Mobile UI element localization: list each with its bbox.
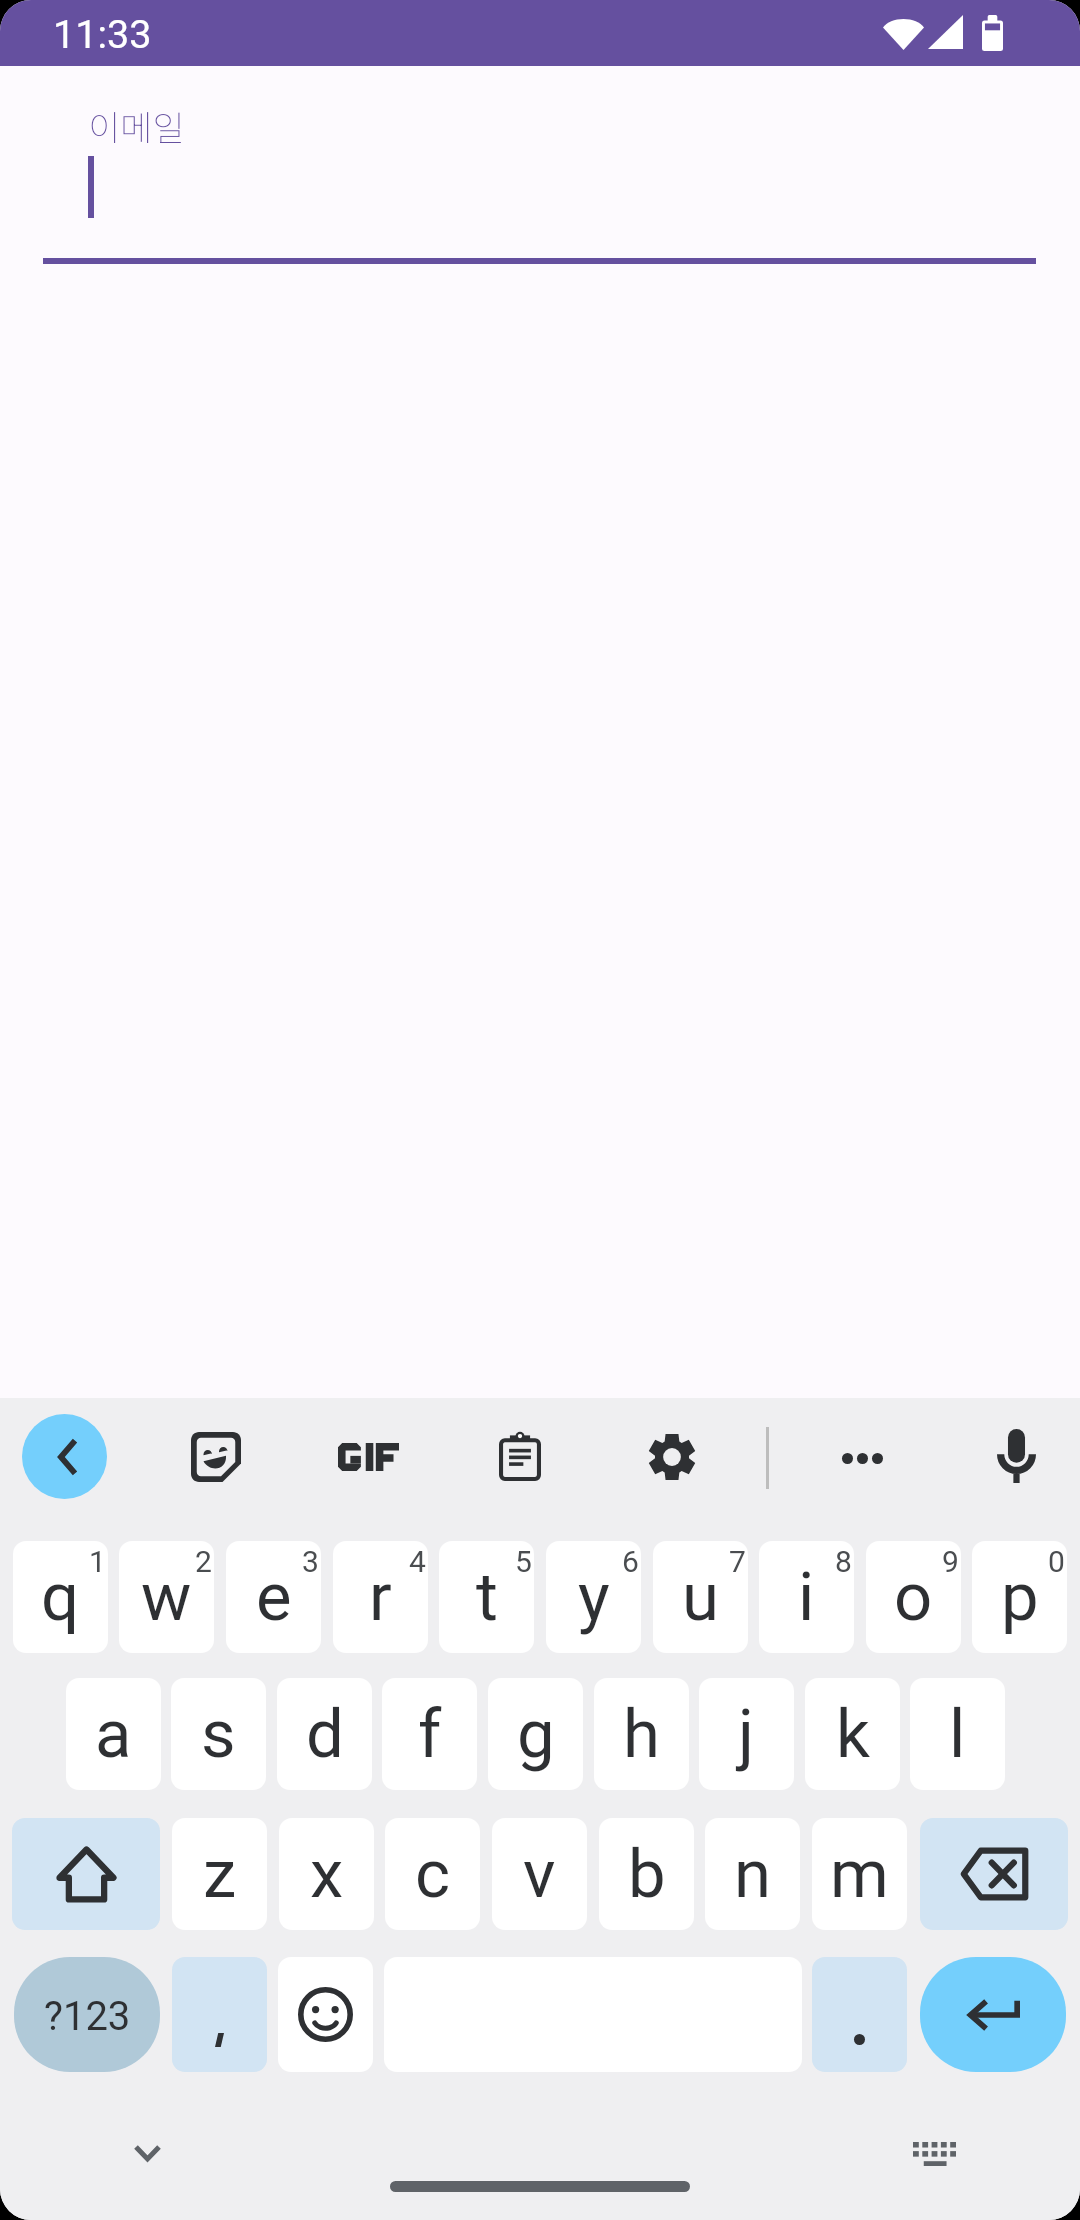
button[interactable]: c xyxy=(385,1818,480,1930)
staticText: m xyxy=(830,1835,889,1914)
staticText: 1 xyxy=(89,1544,106,1579)
button[interactable]: y xyxy=(546,1541,641,1653)
button[interactable]: Voice input xyxy=(976,1416,1056,1496)
staticText: 8 xyxy=(835,1544,852,1579)
button[interactable]: Stickers xyxy=(176,1417,256,1497)
staticText: g xyxy=(517,1695,555,1774)
staticText: a xyxy=(95,1695,132,1774)
button[interactable]: z xyxy=(172,1818,267,1930)
button[interactable]: Shift xyxy=(12,1818,160,1930)
staticText: q xyxy=(41,1558,80,1637)
staticText: c xyxy=(415,1835,451,1914)
staticText: 2 xyxy=(195,1544,212,1579)
button[interactable]: h xyxy=(594,1678,689,1790)
staticText: 7 xyxy=(729,1544,746,1579)
staticText: t xyxy=(476,1558,498,1637)
staticText: x xyxy=(310,1835,344,1914)
button[interactable]: Switch keyboard xyxy=(893,2116,975,2198)
staticText: i xyxy=(798,1558,815,1637)
staticText: ?123 xyxy=(44,1993,131,2040)
staticText: d xyxy=(306,1695,344,1774)
staticText: b xyxy=(628,1835,666,1914)
button[interactable]: Backspace xyxy=(920,1818,1068,1930)
button[interactable]: d xyxy=(277,1678,372,1790)
button[interactable]: Settings xyxy=(632,1417,712,1497)
button[interactable]: Back xyxy=(22,1414,107,1499)
button[interactable]: n xyxy=(705,1818,800,1930)
staticText: 5 xyxy=(515,1544,532,1579)
staticText: r xyxy=(369,1558,392,1637)
button[interactable]: Enter xyxy=(920,1957,1066,2072)
button[interactable]: x xyxy=(279,1818,374,1930)
button[interactable]: k xyxy=(805,1678,900,1790)
staticText: k xyxy=(836,1695,870,1774)
staticText: v xyxy=(523,1835,556,1914)
staticText: 4 xyxy=(409,1544,426,1579)
staticText: e xyxy=(256,1558,292,1637)
button[interactable]: l xyxy=(910,1678,1005,1790)
button[interactable]: e xyxy=(226,1541,321,1653)
button[interactable]: f xyxy=(382,1678,477,1790)
button[interactable]: t xyxy=(439,1541,534,1653)
staticText: s xyxy=(201,1695,236,1774)
staticText: z xyxy=(203,1835,237,1914)
button[interactable]: r xyxy=(333,1541,428,1653)
staticText: j xyxy=(738,1695,755,1774)
staticText: 9 xyxy=(942,1544,959,1579)
button[interactable] xyxy=(812,1957,907,2072)
staticText: 6 xyxy=(622,1544,639,1579)
button[interactable]: s xyxy=(171,1678,266,1790)
staticText: l xyxy=(949,1695,966,1774)
button[interactable]: i xyxy=(759,1541,854,1653)
button[interactable]: ?123 xyxy=(14,1957,160,2072)
button[interactable]: u xyxy=(653,1541,748,1653)
staticText: 이메일 xyxy=(88,100,185,151)
button[interactable]: GIF xyxy=(328,1417,408,1497)
staticText: p xyxy=(1001,1558,1039,1637)
button[interactable]: Emoji xyxy=(278,1957,373,2072)
button[interactable]: q xyxy=(13,1541,108,1653)
staticText: 0 xyxy=(1048,1544,1065,1579)
button[interactable]: g xyxy=(488,1678,583,1790)
button[interactable] xyxy=(172,1957,267,2072)
button[interactable]: b xyxy=(599,1818,694,1930)
staticText: n xyxy=(734,1835,772,1914)
button[interactable]: v xyxy=(492,1818,587,1930)
staticText: o xyxy=(894,1558,933,1637)
button[interactable]: p xyxy=(972,1541,1067,1653)
staticText: y xyxy=(578,1558,610,1637)
staticText: 11:33 xyxy=(53,11,152,57)
staticText: w xyxy=(141,1558,192,1637)
button[interactable]: Hide keyboard xyxy=(106,2116,188,2198)
button[interactable]: w xyxy=(119,1541,214,1653)
button[interactable]: More options xyxy=(820,1417,900,1497)
button[interactable]: j xyxy=(699,1678,794,1790)
staticText: 3 xyxy=(302,1544,319,1579)
button[interactable]: Clipboard xyxy=(480,1417,560,1497)
button[interactable]: m xyxy=(812,1818,907,1930)
staticText: u xyxy=(682,1558,719,1637)
button[interactable]: a xyxy=(66,1678,161,1790)
staticText: h xyxy=(623,1695,660,1774)
staticText: f xyxy=(418,1695,442,1774)
button[interactable]: o xyxy=(866,1541,961,1653)
